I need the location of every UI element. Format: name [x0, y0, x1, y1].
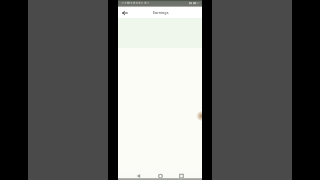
- button[interactable]: Back: [134, 171, 142, 179]
- button[interactable]: Recents: [177, 171, 185, 179]
- button[interactable]: Home: [156, 171, 164, 179]
- staticText: Earnings: [153, 10, 169, 15]
- button[interactable]: Back: [120, 8, 129, 17]
- button[interactable]: Add: [197, 112, 202, 120]
